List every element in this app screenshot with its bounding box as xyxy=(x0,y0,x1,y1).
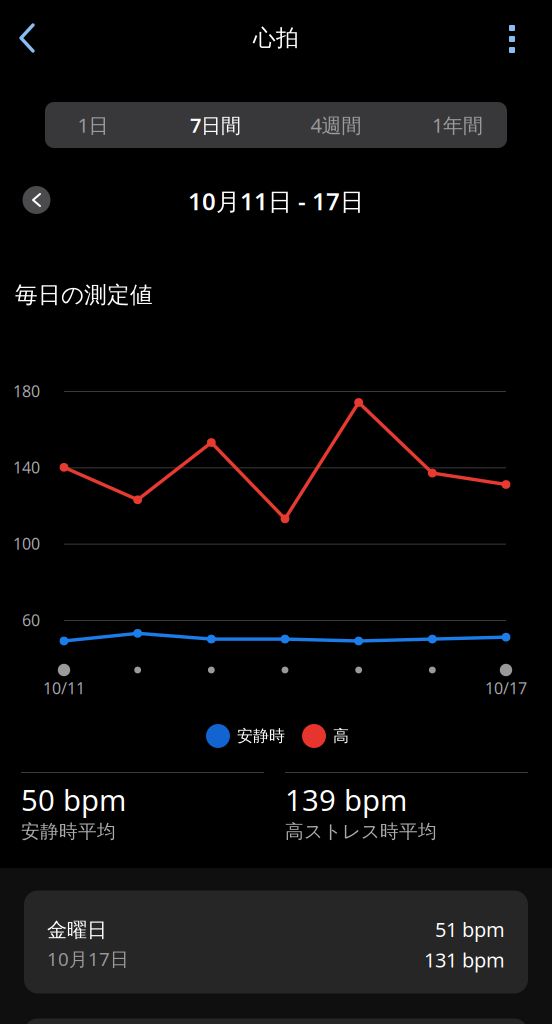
staticText: 60 xyxy=(22,609,40,631)
button[interactable]: 4週間 xyxy=(278,102,394,148)
button[interactable]: Previous week xyxy=(12,176,60,224)
staticText: 10/17 xyxy=(485,677,527,699)
staticText: 50 bpm xyxy=(21,780,126,819)
staticText: 10月17日 xyxy=(47,946,129,971)
staticText: 10月11日 - 17日 xyxy=(188,185,364,217)
staticText: 10/11 xyxy=(43,677,85,699)
staticText: 安静時平均 xyxy=(21,820,116,843)
staticText: 4週間 xyxy=(310,112,361,138)
staticText: 高 xyxy=(333,726,349,746)
staticText: 安静時 xyxy=(237,726,285,746)
button[interactable]: 1日 xyxy=(35,102,151,148)
staticText: 180 xyxy=(13,380,40,402)
staticText: 140 xyxy=(13,457,40,478)
button[interactable]: 7日間 xyxy=(158,102,273,148)
staticText: 毎日の測定値 xyxy=(15,281,153,309)
staticText: 1日 xyxy=(77,112,108,138)
button[interactable]: 木曜日 xyxy=(24,1018,528,1024)
staticText: 金曜日 xyxy=(47,918,107,942)
button[interactable]: More options xyxy=(497,13,527,65)
button[interactable]: 金曜日 xyxy=(24,890,528,993)
staticText: 心拍 xyxy=(253,24,299,52)
button[interactable]: 1年間 xyxy=(400,102,515,148)
staticText: 131 bpm xyxy=(424,946,505,973)
staticText: 高ストレス時平均 xyxy=(285,820,437,843)
staticText: 139 bpm xyxy=(285,780,407,819)
staticText: 7日間 xyxy=(190,112,241,138)
button[interactable]: Back xyxy=(6,9,48,67)
staticText: 100 xyxy=(13,533,40,554)
staticText: 51 bpm xyxy=(435,916,505,942)
staticText: 1年間 xyxy=(432,112,483,138)
